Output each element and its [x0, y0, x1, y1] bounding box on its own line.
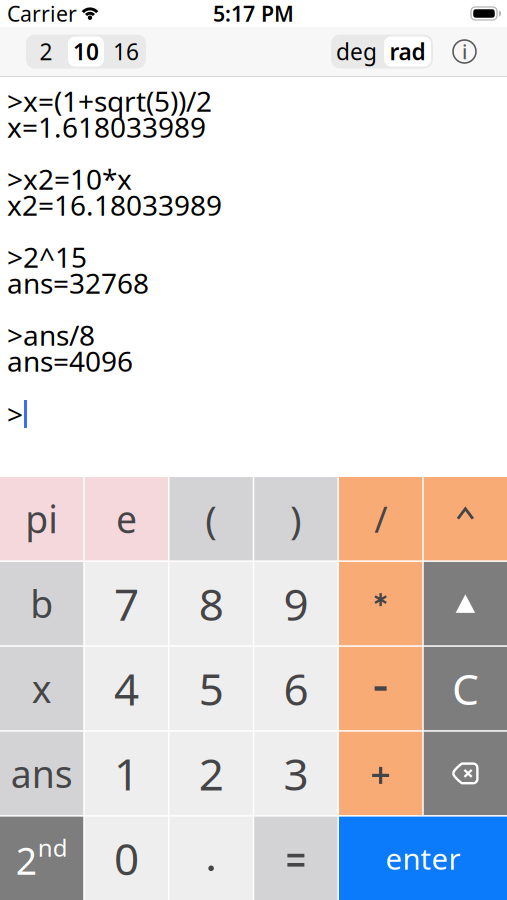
staticText: 2 — [199, 744, 224, 803]
button[interactable]: Delete — [424, 732, 507, 815]
button[interactable]: 8 — [169, 562, 253, 645]
staticText: 7 — [114, 574, 139, 633]
button[interactable]: Decimal point — [169, 817, 253, 900]
button[interactable]: e — [85, 477, 168, 560]
staticText: rad — [389, 36, 425, 66]
staticText: >x2=10*x — [7, 160, 132, 198]
staticText: 2 — [16, 835, 37, 885]
staticText: ( — [205, 493, 217, 544]
staticText: 2 — [39, 36, 52, 66]
staticText — [7, 368, 14, 406]
button[interactable]: rad — [382, 34, 433, 68]
button[interactable]: x — [0, 647, 83, 730]
staticText: >x=(1+sqrt(5))/2 — [7, 82, 212, 120]
staticText: >2^15 — [7, 238, 87, 276]
staticText: 8 — [199, 574, 224, 633]
button[interactable]: ( — [169, 477, 253, 560]
staticText: e — [116, 494, 137, 543]
button[interactable]: 10 — [66, 34, 106, 68]
button[interactable]: 1 — [85, 732, 168, 815]
button[interactable]: ) — [254, 477, 337, 560]
button[interactable]: 0 — [85, 817, 168, 900]
button[interactable]: b — [0, 562, 83, 645]
staticText: i — [462, 38, 467, 65]
staticText — [7, 212, 14, 250]
staticText — [7, 134, 14, 172]
staticText: ans — [11, 749, 73, 798]
staticText: C — [452, 660, 479, 717]
button[interactable]: ans — [0, 732, 83, 815]
button[interactable]: Add — [339, 732, 422, 815]
button[interactable]: 16 — [106, 34, 146, 68]
staticText: 4 — [114, 659, 139, 718]
staticText: x=1.618033989 — [7, 108, 206, 146]
button[interactable]: 4 — [85, 647, 168, 730]
staticText: 5 — [199, 659, 224, 718]
staticText: pi — [25, 494, 58, 543]
staticText: enter — [385, 839, 460, 878]
button[interactable]: Equals — [254, 817, 337, 900]
staticText: x — [32, 664, 52, 713]
staticText: >ans/8 — [7, 316, 95, 354]
staticText: 9 — [283, 574, 308, 633]
staticText: deg — [336, 36, 377, 66]
staticText: 5:17 PM — [213, 0, 294, 28]
button[interactable]: 3 — [254, 732, 337, 815]
button[interactable]: 2 — [169, 732, 253, 815]
button[interactable]: enter — [339, 817, 507, 900]
button[interactable]: C — [424, 647, 507, 730]
staticText: 3 — [283, 744, 308, 803]
button[interactable]: 2 — [26, 34, 66, 68]
button[interactable]: 2nd — [0, 817, 83, 900]
staticText: 6 — [283, 659, 308, 718]
button[interactable]: 9 — [254, 562, 337, 645]
button[interactable]: 6 — [254, 647, 337, 730]
staticText: Carrier — [7, 0, 77, 28]
button[interactable]: Subtract — [339, 647, 422, 730]
button[interactable]: Power — [424, 477, 507, 560]
staticText: ans=32768 — [7, 264, 149, 302]
button[interactable]: Multiply — [339, 562, 422, 645]
staticText: 10 — [73, 36, 99, 66]
button[interactable]: 5 — [169, 647, 253, 730]
staticText: 1 — [114, 744, 139, 803]
staticText: / — [374, 495, 387, 543]
button[interactable]: Up — [424, 562, 507, 645]
staticText: ) — [290, 493, 302, 544]
button[interactable]: Info — [452, 39, 477, 64]
staticText: nd — [38, 831, 68, 863]
button[interactable]: deg — [331, 34, 382, 68]
staticText: x2=16.18033989 — [7, 186, 222, 224]
staticText: ans=4096 — [7, 342, 133, 380]
button[interactable]: / — [339, 477, 422, 560]
staticText: b — [30, 579, 53, 628]
staticText: 16 — [113, 36, 139, 66]
staticText — [7, 290, 14, 328]
button[interactable]: 7 — [85, 562, 168, 645]
staticText: > — [7, 395, 23, 433]
button[interactable]: pi — [0, 477, 83, 560]
staticText: 0 — [114, 829, 139, 887]
